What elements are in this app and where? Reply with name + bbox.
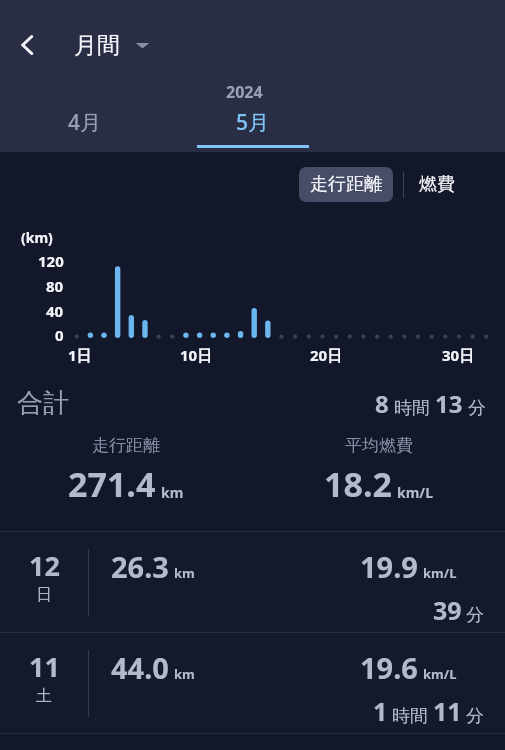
staticText: 40 <box>46 301 64 321</box>
staticText: 8 <box>375 387 389 420</box>
staticText: 平均燃費 <box>345 435 413 456</box>
staticText: 日 <box>36 585 52 605</box>
staticText: 分 <box>466 705 484 728</box>
staticText: 月間 <box>74 31 120 60</box>
staticText: 1 <box>373 694 388 728</box>
button[interactable]: 11 <box>0 633 505 734</box>
staticText: 燃費 <box>419 173 455 196</box>
staticText: 走行距離 <box>92 435 160 456</box>
staticText: 19.6 <box>360 648 418 687</box>
button[interactable]: 12 <box>0 532 505 633</box>
staticText: 土 <box>36 686 52 706</box>
staticText: km/L <box>423 564 457 582</box>
staticText: km/L <box>423 665 457 683</box>
staticText: (km) <box>21 228 53 247</box>
staticText: 26.3 <box>111 547 169 586</box>
button[interactable]: 月間 <box>74 23 150 67</box>
staticText: 30日 <box>442 345 475 365</box>
staticText: 13 <box>435 387 463 420</box>
staticText: 18.2 <box>324 461 392 507</box>
button[interactable]: 5月 <box>169 105 337 152</box>
staticText: 時間 <box>394 397 430 420</box>
staticText: km <box>174 665 195 683</box>
staticText: 10日 <box>180 345 213 365</box>
staticText: km <box>174 564 195 582</box>
staticText: 時間 <box>392 705 428 728</box>
staticText: 5月 <box>236 108 270 137</box>
button[interactable]: 燃費 <box>415 167 459 202</box>
staticText: 39 <box>433 593 462 627</box>
staticText: 120 <box>38 251 64 271</box>
staticText: 271.4 <box>68 461 156 507</box>
staticText: 2024 <box>226 81 263 103</box>
staticText: km <box>161 483 184 502</box>
staticText: 分 <box>466 604 484 627</box>
staticText: km/L <box>397 483 433 502</box>
staticText: 分 <box>468 397 486 420</box>
staticText: 80 <box>46 276 64 296</box>
staticText: 11 <box>433 694 462 728</box>
staticText: 走行距離 <box>310 173 382 196</box>
staticText: 11 <box>29 648 60 685</box>
staticText: 44.0 <box>111 648 169 687</box>
button[interactable]: 走行距離 <box>299 167 393 202</box>
staticText: 20日 <box>310 345 343 365</box>
staticText: 1日 <box>68 345 92 365</box>
staticText: 4月 <box>68 108 102 137</box>
button[interactable]: Back <box>6 23 50 67</box>
button[interactable]: 4月 <box>0 105 169 152</box>
staticText: 合計 <box>17 387 69 420</box>
staticText: 19.9 <box>360 547 418 586</box>
staticText: 12 <box>29 547 60 584</box>
staticText: 0 <box>55 325 64 345</box>
